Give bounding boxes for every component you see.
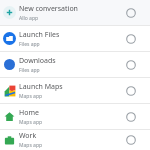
button[interactable]: Select Downloads — [124, 58, 138, 72]
button[interactable]: Select Launch Files — [124, 32, 138, 46]
button[interactable]: Work — [0, 130, 150, 150]
button[interactable]: New conversation — [0, 0, 150, 25]
button[interactable]: Select Work — [124, 133, 138, 147]
staticText: Maps app — [19, 93, 43, 100]
staticText: Maps app — [19, 142, 43, 149]
button[interactable]: Downloads — [0, 52, 150, 77]
staticText: Files app — [19, 67, 40, 74]
staticText: Files app — [19, 41, 40, 48]
button[interactable]: Select Home — [124, 110, 138, 124]
staticText: Maps app — [19, 119, 43, 126]
button[interactable]: Launch Maps — [0, 78, 150, 103]
button[interactable]: Home — [0, 104, 150, 129]
staticText: Work — [19, 131, 37, 141]
staticText: New conversation — [19, 4, 78, 14]
button[interactable]: Select New conversation — [124, 6, 138, 20]
staticText: Allo app — [19, 15, 39, 22]
staticText: Launch Maps — [19, 82, 63, 92]
staticText: Launch Files — [19, 30, 60, 40]
button[interactable]: Select Launch Maps — [124, 84, 138, 98]
staticText: Downloads — [19, 56, 56, 66]
staticText: Home — [19, 108, 39, 118]
button[interactable]: Launch Files — [0, 26, 150, 51]
